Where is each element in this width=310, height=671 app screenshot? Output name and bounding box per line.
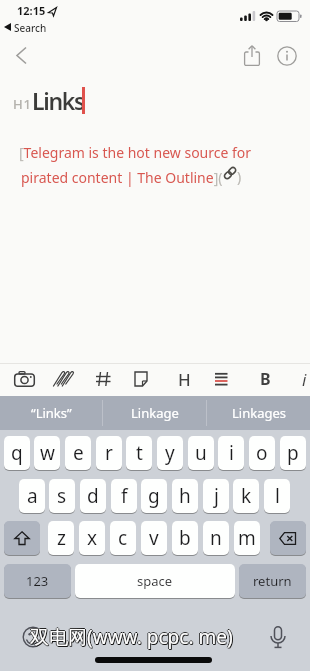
staticText: y xyxy=(165,440,175,466)
button[interactable]: y xyxy=(157,436,183,470)
button[interactable]: d xyxy=(80,479,106,513)
button[interactable] xyxy=(48,364,78,394)
button[interactable]: a xyxy=(19,479,45,513)
button[interactable]: h xyxy=(172,479,198,513)
staticText: p xyxy=(287,440,299,466)
button[interactable] xyxy=(4,521,40,555)
staticText: v xyxy=(149,525,159,551)
staticText: z xyxy=(57,525,66,551)
staticText: “Links” xyxy=(31,404,72,422)
button[interactable]: t xyxy=(126,436,152,470)
staticText: x xyxy=(87,525,98,551)
staticText: 双电网(www. pcpc. me) xyxy=(29,624,232,650)
button[interactable] xyxy=(264,620,292,654)
button[interactable]: e xyxy=(65,436,91,470)
button[interactable]: l xyxy=(264,479,290,513)
staticText: s xyxy=(57,483,67,509)
button[interactable]: Linkage xyxy=(103,396,206,430)
button[interactable]: o xyxy=(249,436,275,470)
staticText: n xyxy=(210,525,222,551)
staticText: o xyxy=(256,440,268,466)
button[interactable]: f xyxy=(111,479,137,513)
button[interactable]: n xyxy=(203,521,229,555)
button[interactable] xyxy=(276,45,300,69)
button[interactable]: w xyxy=(34,436,60,470)
staticText: Linkage xyxy=(131,404,179,422)
staticText: 12:15 xyxy=(17,3,46,18)
staticText: 双电网(www. pcpc. me) xyxy=(30,624,233,650)
staticText: Links xyxy=(32,85,85,116)
button[interactable]: v xyxy=(141,521,167,555)
button[interactable]: H xyxy=(171,364,197,394)
button[interactable]: i xyxy=(294,364,310,394)
staticText: w xyxy=(40,440,55,466)
button[interactable]: c xyxy=(110,521,136,555)
button[interactable]: p xyxy=(280,436,306,470)
staticText: g xyxy=(148,483,160,509)
staticText: 双电网(www. pcpc. me) xyxy=(31,624,234,650)
button[interactable] xyxy=(270,521,306,555)
staticText: t xyxy=(136,440,143,466)
staticText: return xyxy=(253,572,292,590)
button[interactable]: space xyxy=(75,564,235,598)
button[interactable]: j xyxy=(203,479,229,513)
button[interactable] xyxy=(208,364,236,394)
staticText: H1 xyxy=(13,95,32,113)
button[interactable]: B xyxy=(252,364,278,394)
button[interactable]: g xyxy=(141,479,167,513)
staticText: d xyxy=(87,483,99,509)
button[interactable]: 123 xyxy=(4,564,71,598)
staticText: k xyxy=(241,483,252,509)
staticText: ) xyxy=(237,167,242,186)
staticText: space xyxy=(137,572,173,590)
button[interactable]: r xyxy=(96,436,122,470)
button[interactable]: i xyxy=(218,436,244,470)
button[interactable]: q xyxy=(4,436,30,470)
staticText: l xyxy=(275,483,280,509)
staticText: 双电网(www. pcpc. me) xyxy=(31,625,234,651)
staticText: 双电网(www. pcpc. me) xyxy=(30,623,233,649)
staticText: u xyxy=(195,440,207,466)
staticText: m xyxy=(238,525,256,551)
staticText: h xyxy=(179,483,191,509)
button[interactable]: u xyxy=(188,436,214,470)
staticText: r xyxy=(105,440,113,466)
staticText: B xyxy=(260,368,271,390)
staticText: a xyxy=(27,483,38,509)
button[interactable] xyxy=(89,364,119,394)
staticText: 双电网(www. pcpc. me) xyxy=(30,625,233,651)
staticText: e xyxy=(73,440,84,466)
staticText: Linkages xyxy=(232,404,286,422)
staticText: [Telegram is the hot new source for xyxy=(19,143,252,162)
button[interactable]: x xyxy=(79,521,105,555)
staticText: f xyxy=(121,483,128,509)
button[interactable]: “Links” xyxy=(0,396,102,430)
button[interactable] xyxy=(126,364,156,394)
button[interactable]: z xyxy=(48,521,74,555)
staticText: i xyxy=(229,440,234,466)
button[interactable]: k xyxy=(233,479,259,513)
button[interactable]: b xyxy=(172,521,198,555)
button[interactable]: s xyxy=(49,479,75,513)
staticText: pirated content | The Outline]( xyxy=(21,168,223,187)
button[interactable]: return xyxy=(239,564,306,598)
staticText: 123 xyxy=(26,572,49,590)
staticText: q xyxy=(11,440,23,466)
staticText: H xyxy=(178,368,191,391)
staticText: Search xyxy=(14,21,47,35)
button[interactable] xyxy=(6,42,38,70)
button[interactable] xyxy=(10,364,40,394)
staticText: i xyxy=(302,368,307,391)
button[interactable] xyxy=(18,622,48,652)
button[interactable]: m xyxy=(234,521,260,555)
staticText: c xyxy=(118,525,128,551)
staticText: j xyxy=(214,483,219,509)
button[interactable] xyxy=(238,42,266,70)
button[interactable]: Linkages xyxy=(207,396,310,430)
staticText: b xyxy=(179,525,191,551)
